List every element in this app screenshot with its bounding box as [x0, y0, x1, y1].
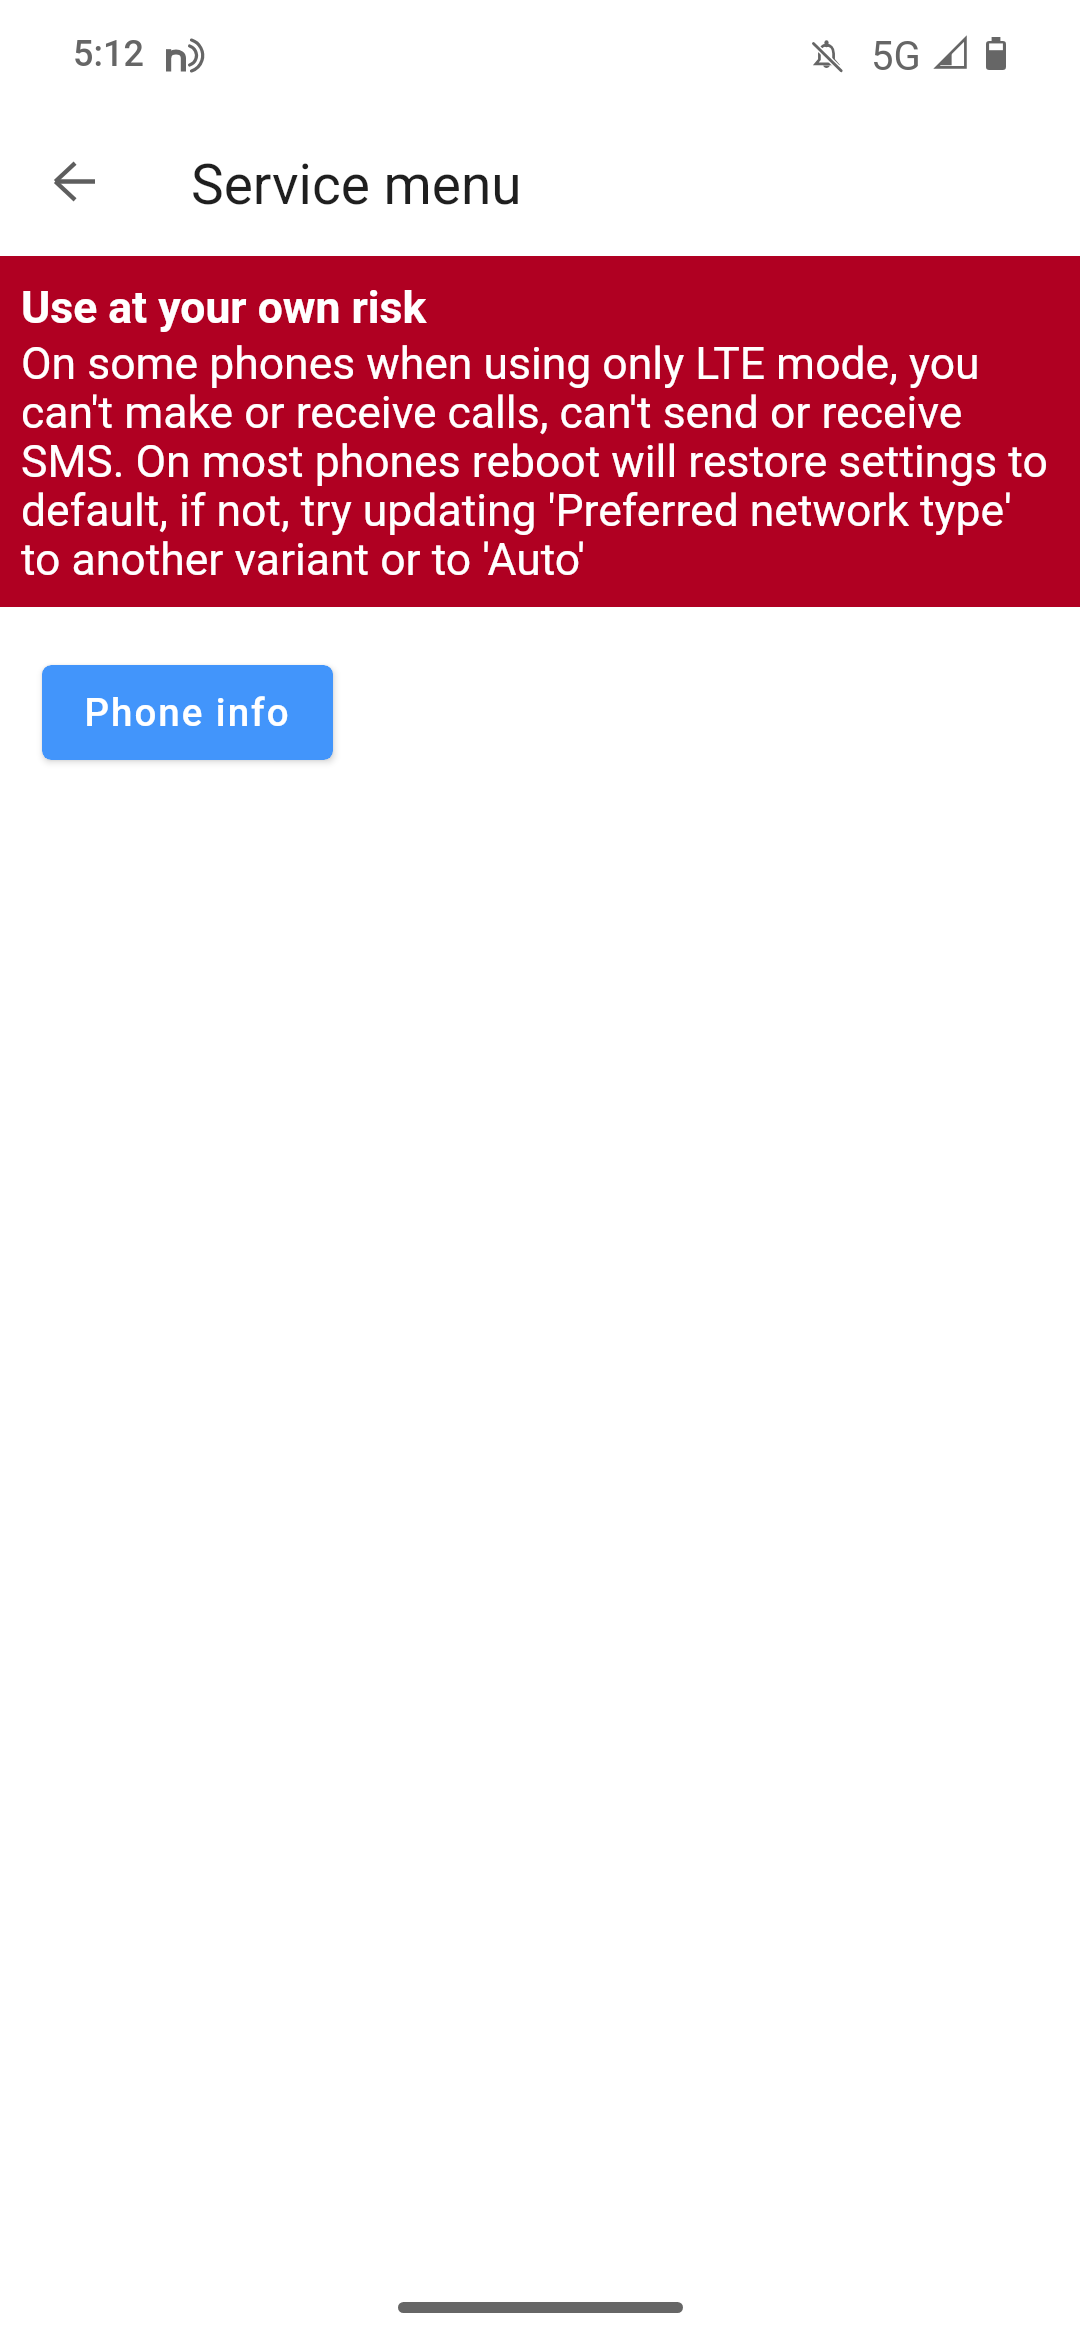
button[interactable]: Phone info — [42, 665, 333, 760]
staticText: On some phones when using only LTE mode,… — [21, 338, 1059, 586]
staticText: Use at your own risk — [21, 282, 427, 334]
staticText: 5G — [871, 33, 921, 80]
staticText: Service menu — [191, 153, 522, 217]
staticText: Phone info — [84, 690, 291, 735]
button[interactable]: Back — [20, 131, 128, 239]
staticText: 5:12 — [73, 33, 144, 75]
